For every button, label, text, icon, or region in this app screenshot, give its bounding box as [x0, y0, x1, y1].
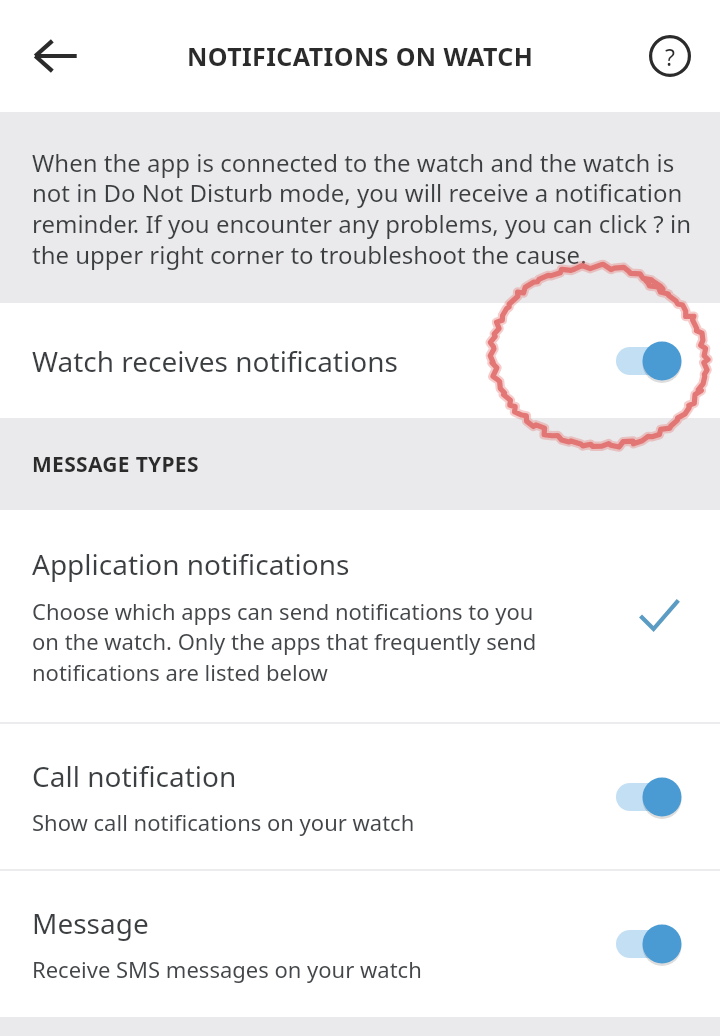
button[interactable]: Message — [0, 871, 720, 1017]
staticText: Message — [32, 904, 149, 942]
staticText: Watch receives notifications — [32, 342, 398, 380]
button[interactable]: Toggle — [616, 339, 690, 383]
staticText: Receive SMS messages on your watch — [32, 954, 422, 984]
staticText: NOTIFICATIONS ON WATCH — [187, 39, 534, 73]
staticText: Choose which apps can send notifications… — [32, 596, 550, 688]
staticText: Application notifications — [32, 545, 350, 583]
staticText: Show call notifications on your watch — [32, 807, 415, 837]
button[interactable]: Toggle — [616, 922, 690, 966]
button[interactable]: Back — [16, 16, 96, 96]
staticText: Call notification — [32, 757, 237, 795]
button[interactable]: Toggle — [616, 775, 690, 819]
staticText: When the app is connected to the watch a… — [32, 146, 696, 271]
button[interactable]: Watch receives notifications — [0, 303, 720, 418]
staticText: ? — [665, 41, 675, 72]
button[interactable]: Application notifications — [0, 510, 720, 722]
button[interactable]: Call notification — [0, 724, 720, 869]
staticText: MESSAGE TYPES — [32, 450, 199, 479]
button[interactable]: Help — [634, 20, 706, 92]
button[interactable]: Enabled — [636, 593, 682, 639]
